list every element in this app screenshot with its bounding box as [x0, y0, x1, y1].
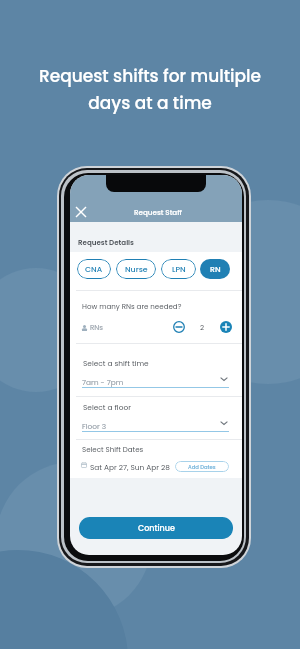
staticText: Request shifts for multiple days at a ti…: [0, 64, 300, 115]
staticText: Select Shift Dates: [82, 445, 144, 455]
staticText: 2: [200, 323, 205, 333]
button[interactable]: Increase: [220, 321, 232, 333]
button[interactable]: Add Dates: [175, 461, 229, 472]
staticText: Floor 3: [82, 421, 107, 431]
staticText: CNA: [85, 264, 103, 275]
staticText: RNs: [90, 323, 104, 333]
button[interactable]: Decrease: [173, 321, 185, 333]
staticText: 7am - 7pm: [82, 377, 124, 387]
staticText: How many RNs are needed?: [82, 302, 182, 312]
staticText: LPN: [172, 264, 186, 275]
staticText: Sat Apr 27, Sun Apr 28: [90, 462, 170, 472]
staticText: Request Staff: [134, 207, 182, 217]
staticText: Select a shift time: [83, 358, 149, 368]
staticText: Nurse: [125, 264, 148, 275]
button[interactable]: RN: [200, 259, 230, 279]
staticText: Add Dates: [188, 463, 216, 470]
button[interactable]: Nurse: [116, 259, 156, 279]
staticText: Request Details: [78, 238, 134, 248]
staticText: Continue: [138, 523, 175, 534]
button[interactable]: Close: [73, 204, 89, 220]
button[interactable]: LPN: [161, 259, 196, 279]
button[interactable]: Continue: [79, 517, 233, 539]
staticText: Select a floor: [83, 402, 131, 412]
button[interactable]: CNA: [77, 259, 111, 279]
staticText: RN: [210, 264, 221, 275]
